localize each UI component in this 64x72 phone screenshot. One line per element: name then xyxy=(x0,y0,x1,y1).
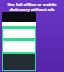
staticText: dictionary without ads xyxy=(9,7,55,12)
staticText: Use full offline or mobile xyxy=(7,2,57,7)
